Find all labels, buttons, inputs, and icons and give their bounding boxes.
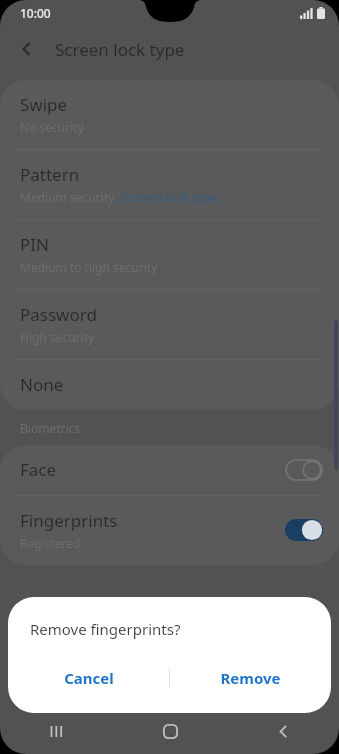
staticText: Current lock type — [120, 189, 217, 205]
button[interactable]: Back — [259, 708, 307, 754]
staticText: Biometrics — [20, 420, 81, 436]
button[interactable]: Toggle off — [285, 459, 323, 481]
staticText: Swipe — [20, 93, 68, 116]
button[interactable]: Toggle on — [285, 519, 323, 541]
button[interactable]: Recents — [33, 708, 81, 754]
button[interactable]: Remove — [170, 657, 331, 699]
button[interactable]: Pattern — [0, 150, 339, 219]
staticText: Screen lock type — [55, 38, 185, 61]
staticText: Password — [20, 303, 97, 326]
staticText: PIN — [20, 233, 49, 256]
button[interactable]: Face — [0, 445, 339, 495]
staticText: Pattern — [20, 163, 80, 186]
staticText: No security — [20, 119, 84, 135]
staticText: Registered — [20, 535, 81, 551]
button[interactable]: None — [0, 360, 339, 410]
staticText: None — [20, 373, 64, 396]
button[interactable]: Swipe — [0, 80, 339, 149]
button[interactable]: Home — [146, 708, 194, 754]
staticText: High security — [20, 329, 95, 345]
button[interactable]: Password — [0, 290, 339, 359]
staticText: Cancel — [64, 668, 114, 688]
button[interactable]: PIN — [0, 220, 339, 289]
staticText: Remove — [220, 668, 281, 688]
staticText: Remove fingerprints? — [30, 619, 181, 639]
staticText: Medium security, — [20, 189, 120, 205]
staticText: Face — [20, 458, 57, 481]
staticText: Medium to high security — [20, 259, 158, 275]
button[interactable]: Back — [10, 32, 44, 66]
button[interactable]: Fingerprints — [0, 496, 339, 565]
staticText: 10:00 — [20, 5, 51, 21]
staticText: Fingerprints — [20, 509, 118, 532]
button[interactable]: Cancel — [8, 657, 169, 699]
